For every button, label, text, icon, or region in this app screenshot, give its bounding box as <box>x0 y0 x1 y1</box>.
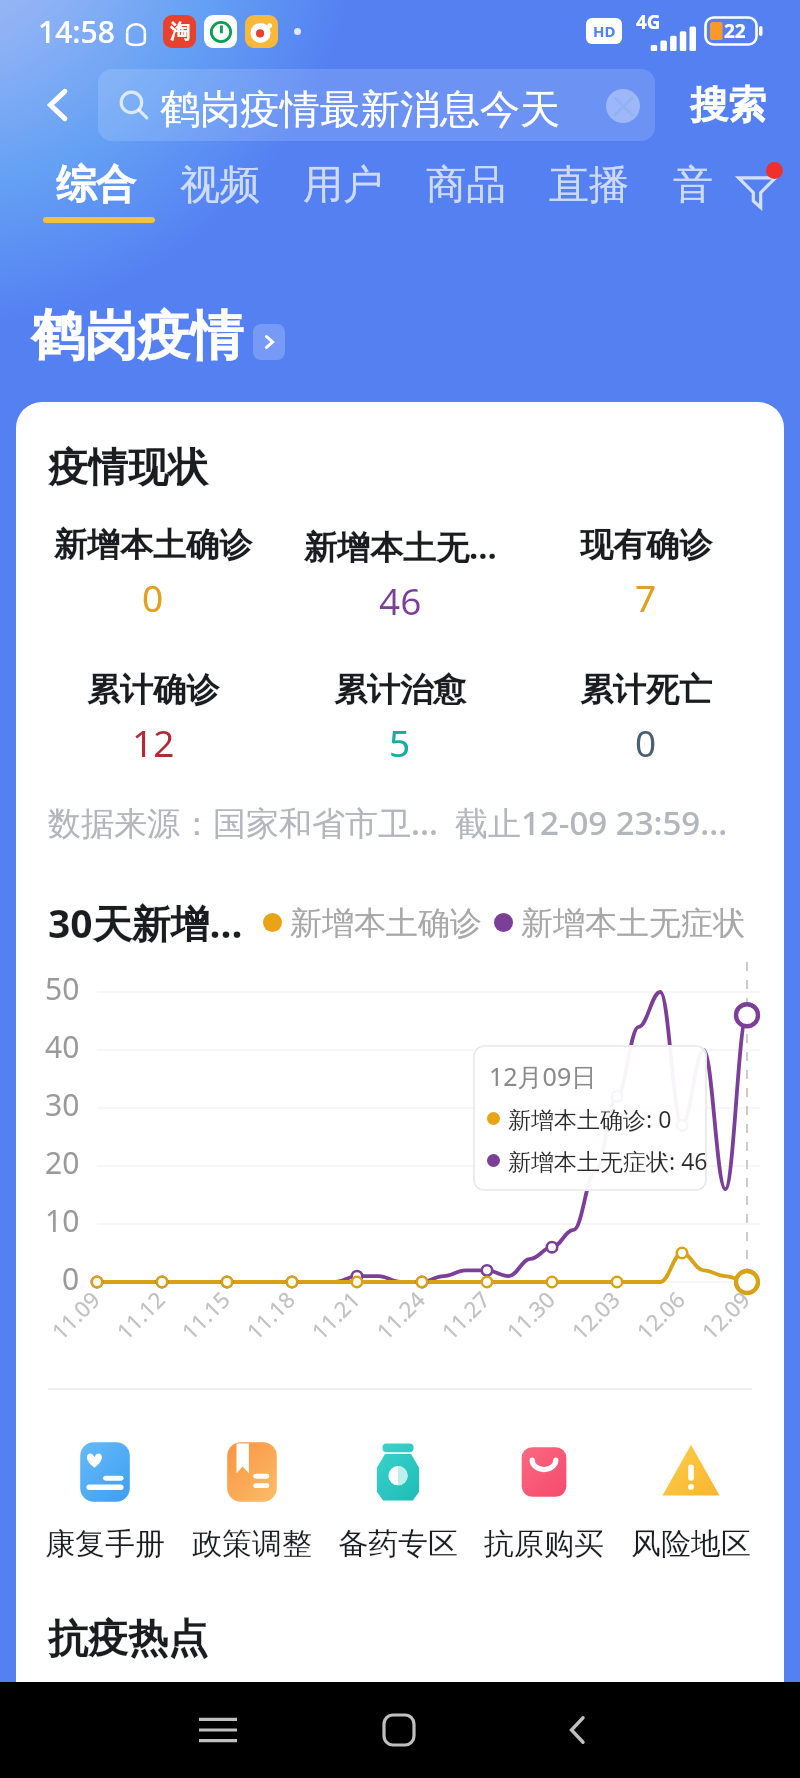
staticText: 新增本土确诊 <box>54 524 252 566</box>
button[interactable]: 新增本土无... <box>280 524 520 634</box>
staticText: 20 <box>45 1142 80 1183</box>
staticText: 累计确诊 <box>87 669 219 711</box>
staticText: HD <box>593 21 616 41</box>
staticText: 11.15 <box>175 1284 236 1345</box>
staticText: 搜索 <box>690 81 766 129</box>
staticText: 新增本土无症状 <box>521 903 745 943</box>
staticText: 淘 <box>170 19 190 44</box>
button[interactable]: Clear <box>606 89 640 123</box>
button[interactable]: 鹤岗疫情 <box>31 303 285 370</box>
staticText: 累计死亡 <box>580 669 712 711</box>
staticText: 10 <box>45 1200 80 1241</box>
staticText: 音 <box>673 159 713 209</box>
button[interactable]: Filter <box>734 166 780 212</box>
button[interactable]: Back <box>18 62 98 148</box>
staticText: 抗原购买 <box>484 1525 604 1563</box>
staticText: 30 <box>45 1084 80 1125</box>
button[interactable]: 音 <box>635 148 751 240</box>
button[interactable]: Home <box>349 1682 449 1778</box>
staticText: 11.12 <box>110 1284 171 1345</box>
staticText: 累计治愈 <box>334 669 466 711</box>
staticText: 新增本土无症状: 46 <box>508 1145 707 1176</box>
staticText: 政策调整 <box>192 1525 312 1563</box>
staticText: 鹤岗疫情 <box>31 303 243 370</box>
staticText: 12 <box>132 717 175 767</box>
button[interactable]: 累计死亡 <box>526 669 766 779</box>
button[interactable]: 政策调整 <box>179 1441 325 1581</box>
staticText: 直播 <box>549 159 629 209</box>
staticText: 12月09日 <box>489 1059 597 1093</box>
staticText: 30天新增... <box>48 896 243 949</box>
staticText: 11.24 <box>370 1284 431 1345</box>
staticText: 康复手册 <box>45 1525 165 1563</box>
button[interactable]: 康复手册 <box>32 1441 178 1581</box>
staticText: 50 <box>45 968 80 1009</box>
staticText: 14:58 <box>38 11 115 52</box>
button[interactable]: 备药专区 <box>325 1441 471 1581</box>
staticText: 新增本土确诊 <box>290 903 482 943</box>
staticText: 用户 <box>303 159 383 209</box>
staticText: 12.06 <box>630 1284 691 1345</box>
button[interactable]: 视频 <box>162 148 278 240</box>
staticText: 商品 <box>426 159 506 209</box>
button[interactable]: 综合 <box>38 148 154 240</box>
staticText: 0 <box>62 1258 80 1299</box>
staticText: 0 <box>635 717 657 767</box>
button[interactable]: Recents <box>168 1682 268 1778</box>
button[interactable]: 直播 <box>531 148 647 240</box>
staticText: 11.09 <box>45 1284 106 1345</box>
staticText: 风险地区 <box>631 1525 751 1563</box>
button[interactable]: 累计治愈 <box>280 669 520 779</box>
staticText: 11.18 <box>240 1284 301 1345</box>
button[interactable]: 新增本土确诊 <box>33 524 273 634</box>
button[interactable]: 风险地区 <box>618 1441 764 1581</box>
staticText: 11.30 <box>500 1284 561 1345</box>
staticText: 现有确诊 <box>580 524 712 566</box>
button[interactable]: 现有确诊 <box>526 524 766 634</box>
staticText: 11.27 <box>435 1284 496 1345</box>
staticText: 视频 <box>180 159 260 209</box>
staticText: 综合 <box>56 159 136 209</box>
staticText: 7 <box>635 572 657 622</box>
staticText: 新增本土确诊: 0 <box>508 1103 672 1134</box>
staticText: 46 <box>379 575 422 625</box>
staticText: 11.21 <box>305 1284 366 1345</box>
staticText: 新增本土无... <box>304 524 497 569</box>
staticText: 4G <box>636 9 661 35</box>
button[interactable]: 搜索 <box>668 62 788 148</box>
staticText: 0 <box>142 572 164 622</box>
staticText: 鹤岗疫情最新消息今天 <box>160 84 560 134</box>
staticText: 数据来源：国家和省市卫... 截止12-09 23:59... <box>48 800 728 845</box>
staticText: 5 <box>389 717 411 767</box>
button[interactable]: 累计确诊 <box>33 669 273 779</box>
staticText: 12.09 <box>695 1284 756 1345</box>
button[interactable]: 商品 <box>408 148 524 240</box>
staticText: 22 <box>724 18 746 44</box>
staticText: 40 <box>45 1026 80 1067</box>
staticText: 疫情现状 <box>48 442 208 492</box>
staticText: 12.03 <box>565 1284 626 1345</box>
staticText: 备药专区 <box>338 1525 458 1563</box>
button[interactable]: 抗原购买 <box>471 1441 617 1581</box>
button[interactable]: Back <box>528 1682 628 1778</box>
button[interactable]: 用户 <box>285 148 401 240</box>
staticText: 抗疫热点 <box>48 1613 208 1663</box>
button[interactable] <box>98 69 655 141</box>
